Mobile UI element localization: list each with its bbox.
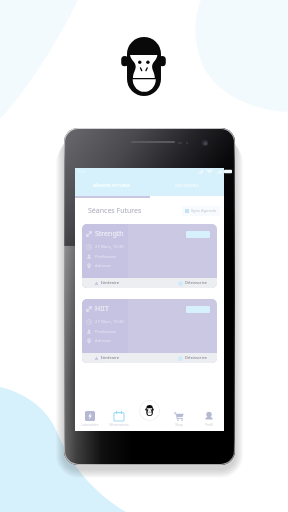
button[interactable]: Sync Agenda bbox=[185, 208, 217, 214]
staticText: Sync Agenda bbox=[191, 208, 217, 214]
staticText: Adresse bbox=[95, 338, 111, 344]
staticText: ANCIENNES bbox=[175, 183, 199, 189]
staticText: Laboratoire bbox=[81, 423, 99, 427]
button[interactable]: SÉANCES FUTURES bbox=[75, 175, 149, 196]
staticText: 27 Mars, 10:30 bbox=[95, 319, 124, 325]
button[interactable]: Réservations bbox=[104, 405, 134, 431]
staticText: Professeur bbox=[95, 329, 117, 335]
staticText: 9:41 bbox=[78, 169, 86, 174]
button[interactable]: Itinéraire bbox=[94, 355, 120, 361]
staticText: Séances Futures bbox=[88, 206, 142, 216]
staticText: Itinéraire bbox=[101, 355, 120, 361]
staticText: Désinscrire bbox=[185, 280, 207, 286]
button[interactable]: HIIT bbox=[82, 299, 217, 363]
button[interactable]: Shop bbox=[164, 405, 194, 431]
staticText: HIIT bbox=[95, 304, 109, 314]
staticText: Itinéraire bbox=[101, 280, 120, 286]
staticText: Profil bbox=[205, 423, 213, 427]
button[interactable]: Laboratoire bbox=[75, 405, 104, 431]
button[interactable]: Profil bbox=[194, 405, 224, 431]
staticText: Professeur bbox=[95, 254, 117, 260]
button[interactable]: Accueil bbox=[139, 400, 160, 421]
button[interactable]: Itinéraire bbox=[94, 280, 120, 286]
button[interactable]: Strength bbox=[82, 224, 217, 288]
button[interactable]: Désinscrire bbox=[178, 280, 207, 286]
staticText: Réservations bbox=[109, 423, 129, 427]
staticText: Strength bbox=[95, 229, 124, 239]
staticText: Adresse bbox=[95, 263, 111, 269]
button[interactable]: Désinscrire bbox=[178, 355, 207, 361]
staticText: 27 Mars, 10:30 bbox=[95, 244, 124, 250]
staticText: Désinscrire bbox=[185, 355, 207, 361]
staticText: SÉANCES FUTURES bbox=[93, 183, 131, 189]
staticText: Shop bbox=[175, 423, 183, 427]
